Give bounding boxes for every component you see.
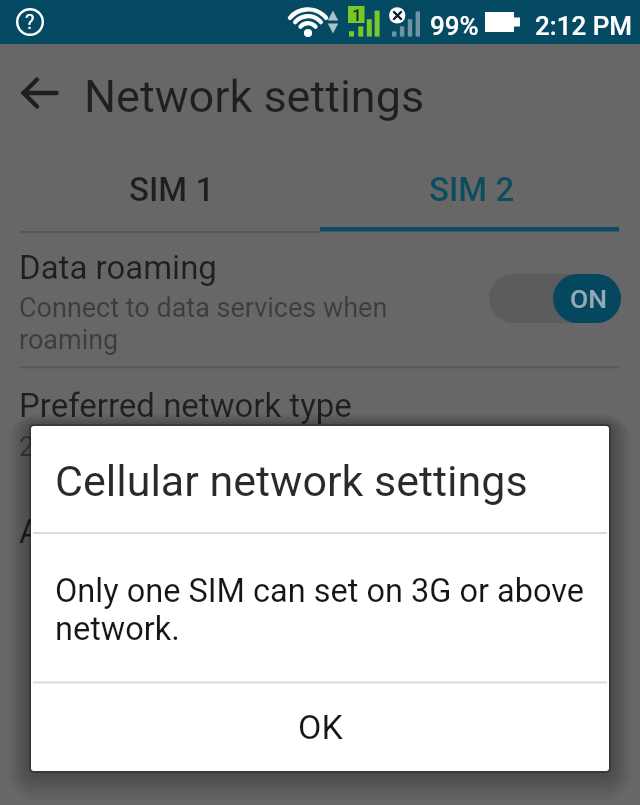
button[interactable]: SIM 2 — [322, 150, 622, 228]
staticText: SIM 2 — [429, 170, 515, 209]
staticText: Only one SIM can set on 3G or above netw… — [55, 572, 603, 648]
button[interactable]: SIM 1 — [22, 150, 322, 228]
button[interactable]: Preferred network type — [0, 374, 640, 470]
button[interactable]: OK — [31, 682, 609, 771]
staticText: 2:12 PM — [535, 11, 632, 41]
staticText: Access Point Names — [19, 512, 325, 551]
staticText: Data roaming — [19, 248, 217, 287]
button[interactable]: Navigate up — [12, 65, 68, 121]
staticText: 1 — [352, 5, 362, 25]
staticText: Network settings — [84, 70, 425, 123]
staticText: Connect to data services when roaming — [19, 292, 419, 356]
staticText: Cellular network settings — [55, 456, 528, 506]
button[interactable]: Data roaming — [0, 236, 640, 366]
staticText: OK — [298, 707, 343, 747]
staticText: SIM 1 — [129, 170, 215, 209]
button[interactable]: Data roaming switch, on — [489, 274, 621, 323]
button[interactable]: Access Point Names — [0, 495, 640, 565]
staticText: ? — [25, 10, 35, 33]
staticText: Preferred network type — [19, 386, 352, 425]
button[interactable]: Help — [16, 8, 44, 36]
staticText: ON — [570, 283, 608, 314]
staticText: 99% — [430, 11, 479, 41]
staticText: 2G/3G/4G (auto connect) — [19, 431, 325, 463]
